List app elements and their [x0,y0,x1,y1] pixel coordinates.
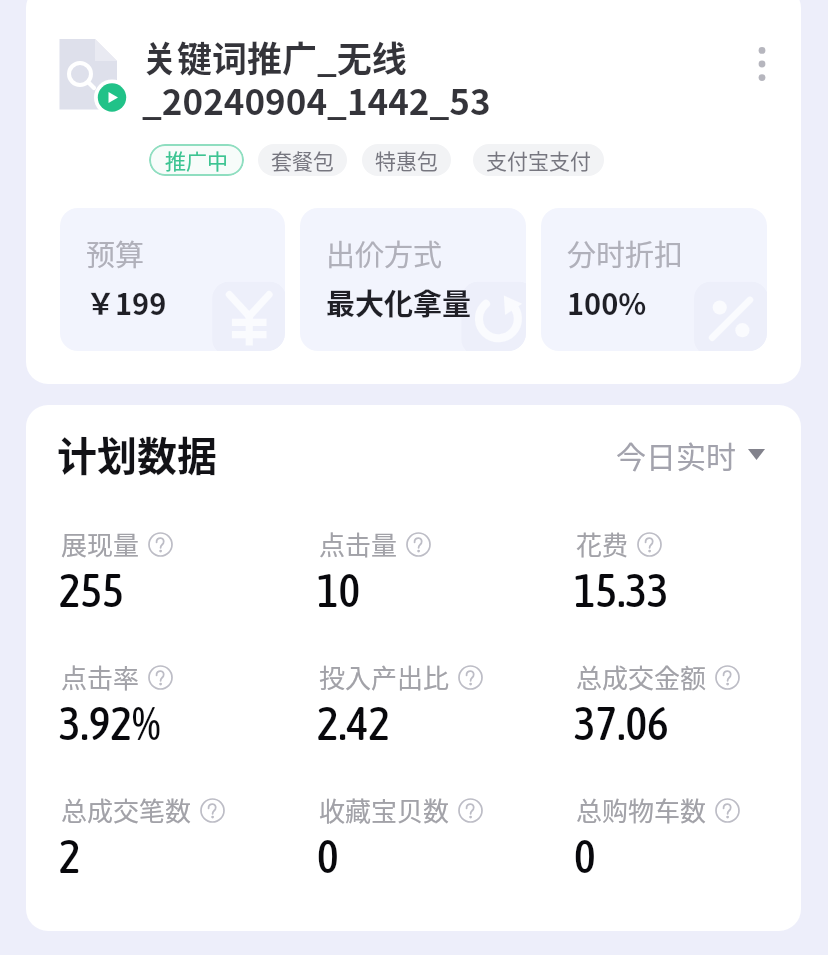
staticText: 15.33 [574,564,669,617]
staticText: 2.42 [317,697,391,750]
staticText: ￥199 [86,281,167,323]
staticText: 套餐包 [271,145,334,175]
staticText: 推广中 [165,145,228,175]
button[interactable]: 支付宝支付 [473,144,604,176]
button[interactable]: 展现量 [61,525,173,563]
button[interactable]: 出价方式 [300,208,526,351]
staticText: 展现量 [61,525,140,563]
staticText: 投入产出比 [319,658,450,696]
staticText: 总购物车数 [576,791,707,829]
staticText: 0 [574,830,596,883]
button[interactable]: 花费 [576,525,662,563]
staticText: 支付宝支付 [486,145,591,175]
staticText: 0 [317,830,339,883]
staticText: 100% [567,281,647,323]
button[interactable]: 套餐包 [258,144,347,176]
button[interactable]: More options [740,42,784,86]
button[interactable]: 总成交金额 [576,658,740,696]
staticText: 花费 [576,525,629,563]
button[interactable]: 预算 [60,208,285,351]
staticText: 10 [317,564,361,617]
staticText: 2 [59,830,81,883]
staticText: 最大化拿量 [326,281,472,323]
button[interactable]: 特惠包 [362,144,451,176]
staticText: 37.06 [574,697,669,750]
staticText: 255 [59,564,124,617]
staticText: 关键词推广_无线 [142,31,407,82]
staticText: 今日实时 [616,433,736,476]
staticText: _20240904_1442_53 [142,74,491,125]
staticText: 3.92% [59,697,161,750]
button[interactable]: 总成交笔数 [61,791,225,829]
staticText: 点击率 [61,658,140,696]
staticText: 总成交笔数 [61,791,192,829]
staticText: 收藏宝贝数 [319,791,450,829]
button[interactable]: 点击量 [319,525,431,563]
button[interactable]: 点击率 [61,658,173,696]
staticText: 特惠包 [375,145,438,175]
button[interactable]: 分时折扣 [541,208,767,351]
staticText: 出价方式 [326,232,443,274]
staticText: 预算 [86,232,145,274]
staticText: 总成交金额 [576,658,707,696]
button[interactable]: 今日实时 [616,433,765,476]
button[interactable]: 推广中 [149,144,244,176]
button[interactable]: 投入产出比 [319,658,483,696]
staticText: 分时折扣 [567,232,684,274]
staticText: 点击量 [319,525,398,563]
button[interactable]: 收藏宝贝数 [319,791,483,829]
button[interactable]: 总购物车数 [576,791,740,829]
staticText: 计划数据 [57,425,217,483]
